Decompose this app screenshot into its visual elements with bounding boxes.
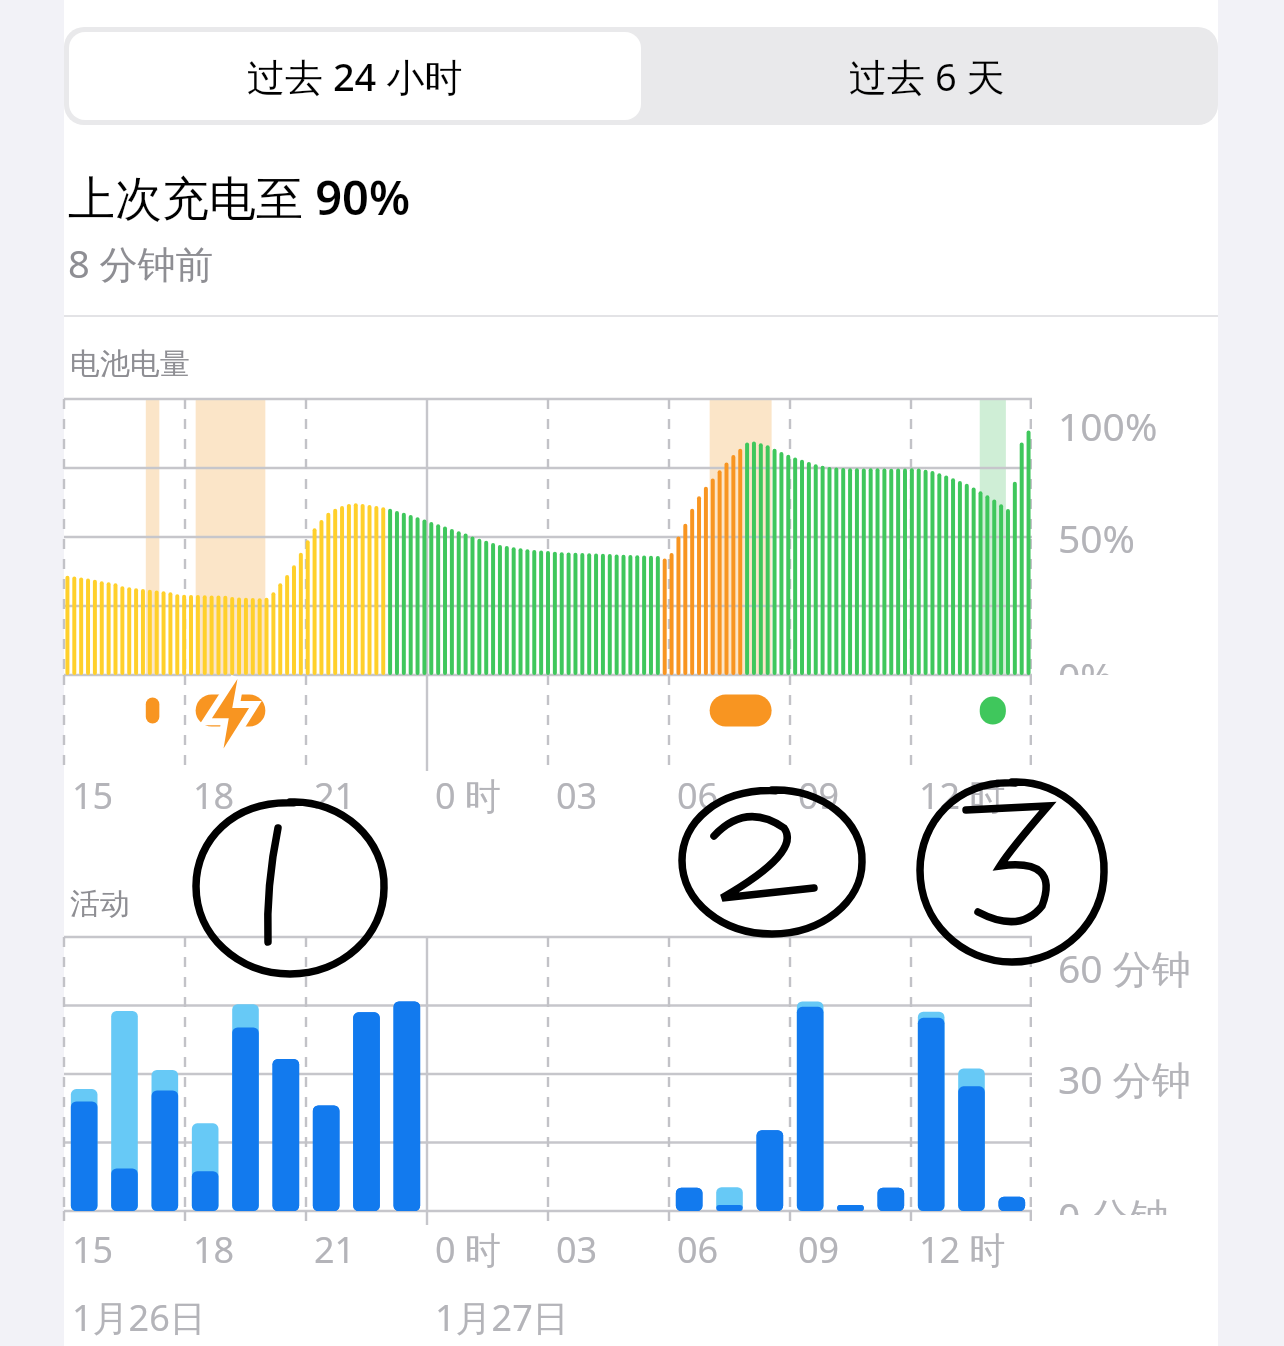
- staticText: 12 时: [919, 1225, 1006, 1274]
- staticText: 活动: [70, 885, 130, 923]
- staticText: 30 分钟: [1058, 1052, 1191, 1105]
- staticText: 03: [556, 771, 598, 820]
- staticText: 1月27日: [435, 1293, 569, 1342]
- staticText: 12 时: [919, 771, 1006, 820]
- staticText: 60 分钟: [1058, 941, 1191, 994]
- staticText: 03: [556, 1225, 598, 1274]
- staticText: 06: [677, 1225, 719, 1274]
- staticText: 0%: [1058, 649, 1113, 675]
- staticText: 06: [677, 771, 719, 820]
- staticText: 电池电量: [70, 345, 190, 383]
- staticText: 100%: [1058, 399, 1158, 452]
- staticText: 15: [72, 771, 114, 820]
- staticText: 1月26日: [72, 1293, 206, 1342]
- staticText: 上次充电至 90%: [68, 165, 411, 229]
- staticText: 0 时: [435, 1225, 501, 1274]
- staticText: 21: [314, 771, 356, 820]
- staticText: 过去 6 天: [849, 50, 1005, 102]
- staticText: 过去 24 小时: [247, 50, 463, 102]
- staticText: 0 分钟: [1058, 1189, 1169, 1215]
- staticText: 0 时: [435, 771, 501, 820]
- staticText: 09: [798, 1225, 840, 1274]
- button[interactable]: 过去 24 小时: [69, 32, 641, 120]
- staticText: 18: [193, 771, 235, 820]
- staticText: 8 分钟前: [68, 237, 214, 289]
- staticText: 09: [798, 771, 840, 820]
- staticText: 18: [193, 1225, 235, 1274]
- staticText: 21: [314, 1225, 356, 1274]
- staticText: 50%: [1058, 511, 1136, 564]
- staticText: 15: [72, 1225, 114, 1274]
- button[interactable]: 过去 6 天: [641, 32, 1213, 120]
